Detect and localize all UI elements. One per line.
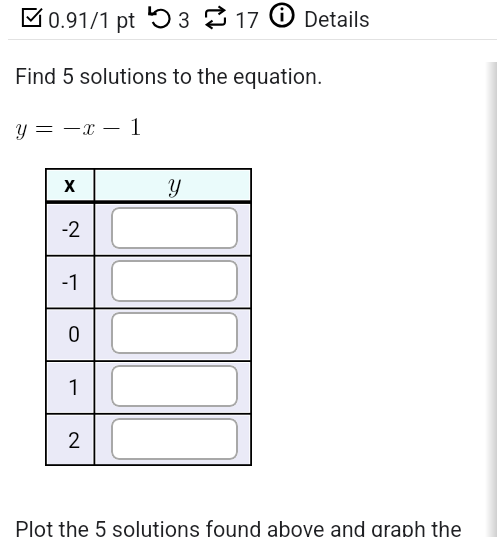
staticText: x (64, 172, 76, 198)
staticText: Find 5 solutions to the equation. (15, 64, 323, 89)
staticText: 17 (235, 8, 260, 33)
button[interactable]: Answer for x = 1 (111, 365, 238, 407)
staticText: 0.91/1 pt (48, 8, 136, 33)
staticText: Plot the 5 solutions found above and gra… (15, 517, 462, 537)
button[interactable]: Attempts (147, 4, 191, 36)
staticText: 2 (68, 428, 81, 453)
other: Details info (268, 1, 296, 29)
button[interactable]: Details info (268, 1, 370, 33)
button[interactable]: Answer for x = 0 (111, 312, 238, 354)
button[interactable]: Answer for x = 2 (111, 418, 238, 460)
button[interactable]: Answer for x = -1 (111, 260, 238, 302)
button[interactable]: Score (21, 4, 136, 36)
staticText: -2 (62, 217, 81, 242)
staticText: Details (304, 7, 370, 32)
staticText: y (166, 159, 181, 199)
button[interactable]: Answer for x = -2 (111, 207, 238, 249)
staticText: 3 (178, 8, 191, 33)
button[interactable]: Versions (204, 4, 260, 36)
other: Attempts (147, 5, 171, 29)
other: Score (21, 7, 42, 28)
staticText: 1 (68, 375, 81, 400)
staticText: y = −x − 1 (14, 107, 142, 142)
staticText: -1 (62, 270, 81, 295)
other: Versions (204, 6, 227, 29)
staticText: 0 (68, 322, 81, 347)
